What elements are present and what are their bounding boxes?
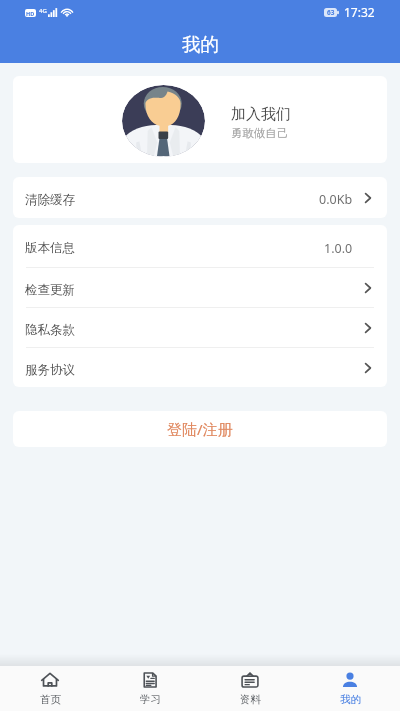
staticText: 17:32 xyxy=(344,4,375,20)
staticText: 首页 xyxy=(40,693,61,706)
staticText: HD xyxy=(26,10,35,17)
staticText: 1.0.0 xyxy=(324,240,353,257)
button[interactable]: 服务协议 xyxy=(13,348,387,387)
button[interactable]: 我的 xyxy=(300,666,400,711)
button[interactable]: 检查更新 xyxy=(13,268,387,307)
staticText: 我的 xyxy=(340,693,361,706)
staticText: 登陆/注册 xyxy=(167,419,233,439)
button[interactable]: 学习 xyxy=(100,666,200,711)
staticText: 0.0Kb xyxy=(319,191,353,208)
staticText: 检查更新 xyxy=(25,282,75,298)
staticText: 学习 xyxy=(140,693,161,706)
button[interactable]: 加入我们 xyxy=(13,76,387,163)
button[interactable]: 版本信息 xyxy=(13,225,387,267)
staticText: 清除缓存 xyxy=(25,192,75,208)
staticText: 加入我们 xyxy=(231,105,291,124)
staticText: 63 xyxy=(327,8,335,17)
staticText: 4G xyxy=(39,7,47,15)
button[interactable]: 登陆/注册 xyxy=(13,411,387,447)
staticText: 隐私条款 xyxy=(25,322,75,338)
staticText: 服务协议 xyxy=(25,362,75,378)
button[interactable]: 清除缓存 xyxy=(13,177,387,218)
staticText: 资料 xyxy=(240,693,261,706)
staticText: 我的 xyxy=(182,33,219,56)
staticText: 勇敢做自己 xyxy=(231,126,289,140)
staticText: 版本信息 xyxy=(25,240,75,256)
button[interactable]: 隐私条款 xyxy=(13,308,387,347)
button[interactable]: 资料 xyxy=(200,666,300,711)
button[interactable]: 首页 xyxy=(0,666,100,711)
